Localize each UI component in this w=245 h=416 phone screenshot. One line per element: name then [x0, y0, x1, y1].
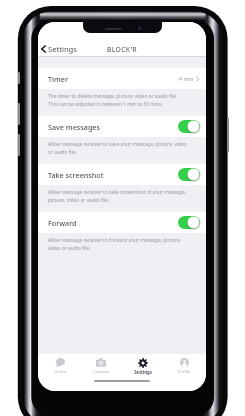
button[interactable]: Chats	[40, 356, 80, 374]
staticText: Save messages	[48, 122, 100, 132]
staticText: 4 min	[179, 75, 194, 82]
staticText: Allow message receiver to forward your m…	[48, 237, 181, 251]
staticText: Timer	[48, 74, 68, 84]
staticText: Forward	[48, 218, 77, 228]
button[interactable]: Forward	[38, 212, 206, 233]
button[interactable]: Profile	[164, 356, 204, 374]
staticText: Camera	[93, 368, 109, 374]
staticText: BLOCK'R	[107, 45, 137, 54]
button[interactable]: Settings	[123, 356, 163, 375]
staticText: The timer to delete message, picture, vi…	[48, 93, 178, 107]
button[interactable]: Camera	[81, 356, 121, 374]
button[interactable]: Forward	[178, 216, 200, 229]
staticText: Settings	[48, 44, 77, 54]
staticText: Chats	[54, 368, 66, 374]
staticText: Profile	[177, 368, 191, 374]
button[interactable]: Save messages	[38, 116, 206, 137]
button[interactable]: Settings	[38, 44, 81, 54]
staticText: Settings	[134, 369, 152, 375]
button[interactable]: Timer	[38, 68, 206, 89]
staticText: Allow message receiver to take screensho…	[48, 189, 187, 203]
button[interactable]: Take screenshot	[178, 168, 200, 181]
staticText: Allow message receiver to save your mess…	[48, 141, 187, 155]
staticText: Take screenshot	[48, 170, 104, 180]
button[interactable]: Save messages	[178, 120, 200, 133]
button[interactable]: Take screenshot	[38, 164, 206, 185]
